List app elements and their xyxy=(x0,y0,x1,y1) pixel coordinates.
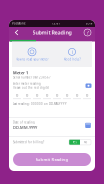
staticText: 0 xyxy=(86,92,88,98)
staticText: 0 xyxy=(56,92,58,98)
staticText: 0 xyxy=(46,92,48,98)
staticText: 0 xyxy=(66,92,68,98)
staticText: 0 xyxy=(26,92,28,98)
staticText: Submit Reading xyxy=(32,29,71,36)
staticText: Serial number 0A1234567 xyxy=(13,76,51,79)
button[interactable]: Help xyxy=(83,28,92,37)
staticText: No xyxy=(83,140,87,144)
button[interactable]: How to read your meter xyxy=(12,47,52,61)
button[interactable]: Back xyxy=(12,28,21,37)
staticText: Need help? xyxy=(63,58,80,61)
staticText: 0 xyxy=(36,92,38,98)
staticText: How to read your meter xyxy=(15,58,48,61)
staticText: Submitted for billing? xyxy=(13,140,44,144)
staticText: 0 xyxy=(16,92,18,98)
staticText: Yes xyxy=(72,140,76,144)
staticText: Vodafone xyxy=(12,22,26,25)
staticText: ? xyxy=(86,29,88,36)
staticText: Last reading: 000000 on DD-MM-YYYY xyxy=(13,102,67,106)
staticText: 0 xyxy=(76,92,78,98)
staticText: Date of reading xyxy=(13,121,35,124)
button[interactable]: i xyxy=(52,47,92,61)
staticText: Enter meter reading xyxy=(13,82,41,85)
button[interactable]: Scan meter xyxy=(86,83,91,88)
button[interactable]: Submit Reading xyxy=(13,153,91,166)
staticText: 13:41 xyxy=(51,22,60,25)
staticText: Meter 1 xyxy=(13,70,28,75)
staticText: 89% xyxy=(86,22,92,25)
button[interactable]: No xyxy=(80,139,91,145)
staticText: Submit Reading xyxy=(35,157,68,162)
button[interactable]: Pick date xyxy=(85,122,91,128)
staticText: DD-MM-YYYY xyxy=(13,125,37,130)
button[interactable]: Yes xyxy=(69,139,80,145)
staticText: (leave out the red digits) xyxy=(13,86,49,89)
